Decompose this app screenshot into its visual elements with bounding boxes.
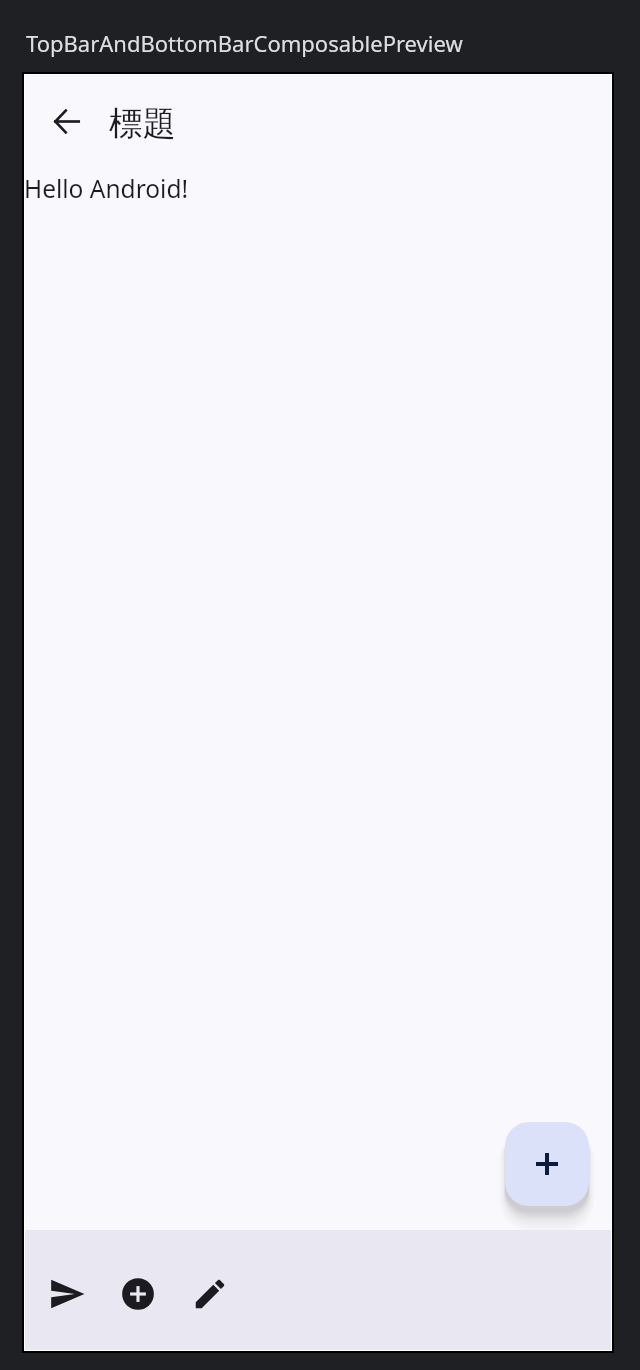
button[interactable]: Edit [186,1270,234,1318]
staticText: TopBarAndBottomBarComposablePreview [26,28,463,58]
staticText: 標題 [109,103,176,145]
button[interactable]: Add [114,1270,162,1318]
button[interactable]: Send [43,1270,91,1318]
button[interactable]: Add new item [505,1122,589,1206]
button[interactable]: Back [42,97,90,145]
staticText: Hello Android! [24,172,189,205]
